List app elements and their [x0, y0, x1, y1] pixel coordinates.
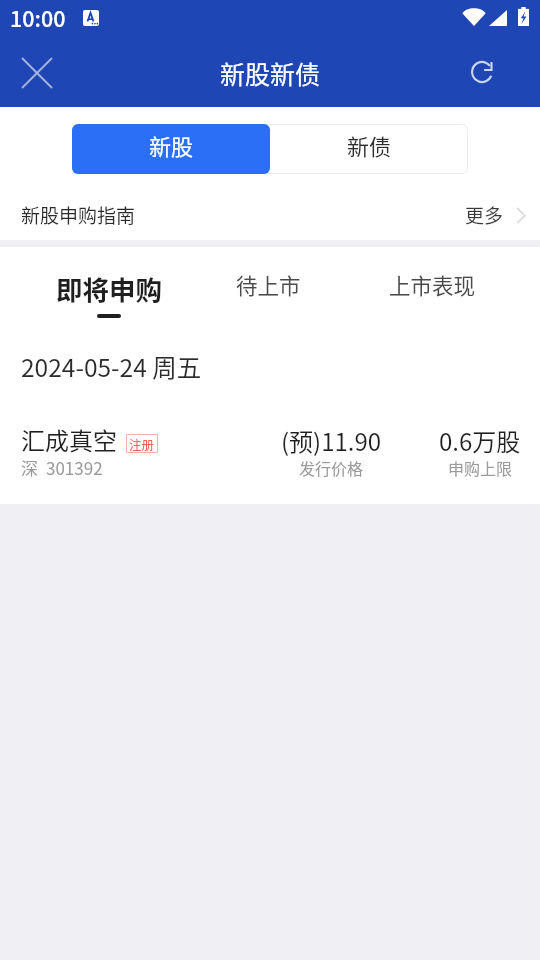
- button[interactable]: 上市表现: [354, 247, 510, 337]
- button[interactable]: 新股申购指南: [0, 190, 540, 240]
- staticText: (预)11.90: [281, 423, 382, 458]
- staticText: 即将申购: [56, 269, 162, 307]
- staticText: 深: [21, 455, 38, 480]
- button[interactable]: 新股: [72, 124, 270, 174]
- staticText: 汇成真空: [21, 422, 117, 457]
- staticText: 0.6万股: [439, 423, 521, 458]
- staticText: 申购上限: [448, 456, 513, 479]
- button[interactable]: 汇成真空: [0, 413, 540, 491]
- staticText: 新股新债: [220, 55, 321, 91]
- staticText: 新股: [149, 129, 194, 161]
- button[interactable]: Close: [0, 40, 76, 107]
- staticText: 301392: [46, 455, 103, 480]
- staticText: 发行价格: [299, 456, 364, 479]
- staticText: 上市表现: [389, 269, 476, 300]
- button[interactable]: 新债: [270, 124, 468, 174]
- staticText: 待上市: [236, 269, 301, 300]
- staticText: 10:00: [10, 2, 66, 33]
- staticText: 注册: [129, 435, 155, 453]
- staticText: 2024-05-24 周五: [21, 349, 202, 384]
- button[interactable]: 即将申购: [31, 247, 187, 337]
- staticText: 新股申购指南: [21, 201, 136, 229]
- button[interactable]: 待上市: [190, 247, 346, 337]
- staticText: 新债: [347, 129, 392, 161]
- staticText: 更多: [465, 201, 504, 229]
- button[interactable]: Refresh: [448, 38, 515, 105]
